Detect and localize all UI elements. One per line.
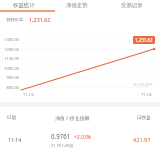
staticText: 11-14 [141,92,152,97]
staticText: 0.9761 [51,132,71,140]
staticText: 天天基金网 [133,82,152,87]
button[interactable]: 交易记录 [108,0,156,11]
staticText: 净值走势 [66,2,88,9]
staticText: 1300.00 [0,37,19,42]
button[interactable]: 净值走势 [53,0,101,11]
button[interactable]: 11-14 [0,128,160,150]
staticText: 交易记录 [121,2,143,9]
staticText: 日期 [7,115,16,121]
button[interactable]: 收益统计 [0,0,48,11]
staticText: 1,231.62 [135,37,153,43]
staticText: 收益统计 [13,2,35,9]
staticText: 日收益 [137,115,151,121]
staticText: +2.03% [74,134,91,141]
staticText: 1,231.62 [29,16,51,23]
staticText: 421.97 [133,136,151,144]
staticText: 持有收益 [6,17,24,22]
staticText: 11-14 [8,137,22,144]
staticText: 净值 / 持仓份额 [55,115,90,122]
staticText: 21,751.49份 [51,143,74,148]
staticText: 1000.00 [0,66,19,71]
staticText: 900.00 [0,75,19,80]
staticText: 11-13 [23,92,34,97]
staticText: 1100.00 [0,56,19,61]
staticText: 1200.00 [0,47,19,52]
staticText: 800.00 [0,85,19,90]
